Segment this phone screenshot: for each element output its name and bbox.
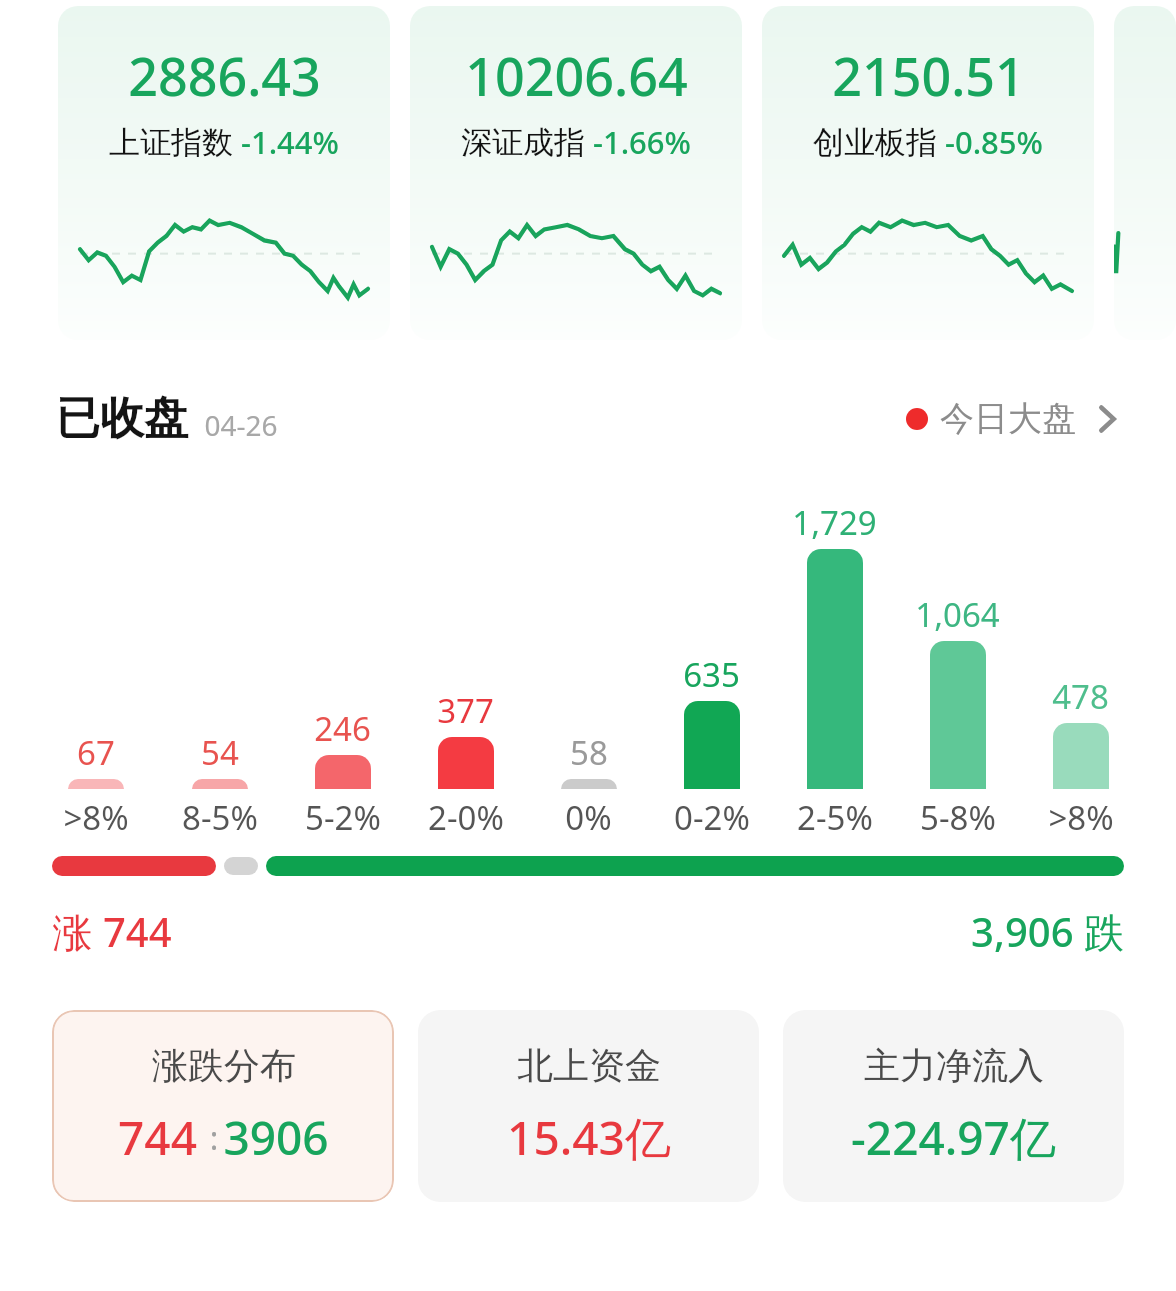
staticText: 1,729: [792, 500, 877, 545]
staticText: 478: [1052, 674, 1109, 719]
staticText: 635: [683, 652, 740, 697]
staticText: 10206.64: [465, 40, 688, 111]
staticText: 744: [118, 1106, 197, 1169]
staticText: 67: [77, 730, 115, 775]
staticText: 15.43亿: [507, 1106, 671, 1169]
button[interactable]: 涨跌分布: [52, 1010, 394, 1202]
staticText: 2150.51: [832, 40, 1025, 111]
staticText: 涨跌分布: [152, 1043, 296, 1088]
staticText: 5-8%: [920, 795, 996, 840]
staticText: :: [197, 1116, 223, 1160]
staticText: -1.44%: [241, 121, 339, 163]
staticText: 377: [437, 688, 494, 733]
staticText: 主力净流入: [864, 1043, 1044, 1088]
staticText: 3906: [223, 1106, 329, 1169]
staticText: >8%: [1048, 795, 1114, 840]
staticText: 2-0%: [428, 795, 504, 840]
staticText: 0%: [565, 795, 612, 840]
button[interactable]: 2886.43: [58, 6, 390, 340]
staticText: -1.66%: [593, 121, 691, 163]
button[interactable]: 北上资金: [418, 1010, 759, 1202]
staticText: 创业板指: [813, 123, 937, 162]
staticText: 深证成指: [461, 123, 585, 162]
staticText: 58: [570, 730, 608, 775]
staticText: 54: [201, 730, 239, 775]
button[interactable]: 2150.51: [762, 6, 1094, 340]
staticText: 3,906 跌: [971, 904, 1124, 959]
staticText: 0-2%: [674, 795, 750, 840]
button[interactable]: More indices: [1114, 6, 1176, 340]
staticText: 今日大盘: [940, 397, 1076, 440]
staticText: -224.97亿: [851, 1106, 1056, 1169]
staticText: 2886.43: [128, 40, 321, 111]
staticText: 8-5%: [182, 795, 258, 840]
button[interactable]: 今日大盘: [906, 387, 1120, 450]
staticText: 涨 744: [52, 904, 172, 959]
button[interactable]: 10206.64: [410, 6, 742, 340]
staticText: 上证指数: [109, 123, 233, 162]
staticText: 北上资金: [517, 1043, 661, 1088]
button[interactable]: 主力净流入: [783, 1010, 1124, 1202]
staticText: 1,064: [915, 592, 1000, 637]
staticText: >8%: [63, 795, 129, 840]
staticText: 246: [314, 706, 371, 751]
staticText: 04-26: [204, 406, 278, 444]
staticText: 2-5%: [797, 795, 873, 840]
staticText: 5-2%: [305, 795, 381, 840]
staticText: 已收盘: [56, 391, 188, 446]
staticText: -0.85%: [945, 121, 1043, 163]
